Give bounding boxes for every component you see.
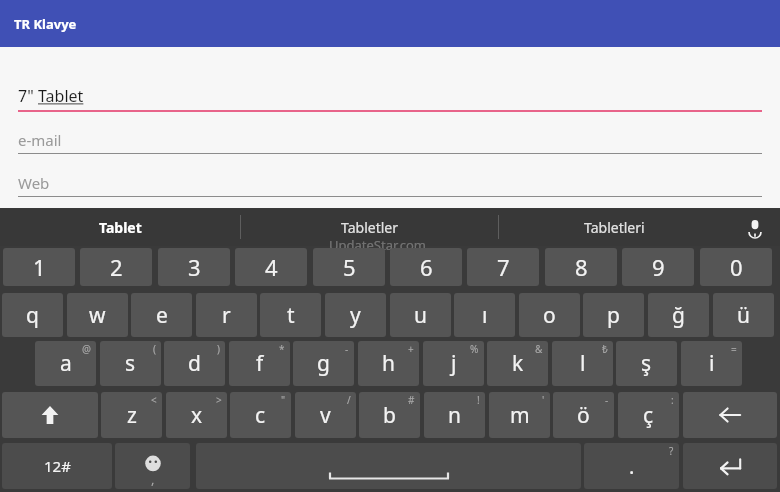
button[interactable]: 0 [700, 248, 772, 286]
button[interactable]: y [325, 293, 386, 337]
button[interactable]: g [293, 341, 354, 386]
staticText: * [279, 342, 285, 356]
button[interactable]: 12# [2, 443, 112, 489]
button[interactable]: ı [454, 293, 515, 337]
staticText: # [408, 393, 415, 407]
staticText: g [317, 349, 330, 378]
staticText: e [156, 301, 168, 330]
button[interactable]: c [230, 392, 291, 438]
staticText: - [605, 393, 609, 407]
staticText: 8 [575, 252, 588, 282]
button[interactable]: Shift [2, 392, 98, 438]
staticText: & [535, 342, 543, 356]
staticText: @ [82, 342, 91, 356]
staticText: 9 [652, 252, 665, 282]
button[interactable]: k [487, 341, 548, 386]
button[interactable]: 2 [80, 248, 152, 286]
staticText: 2 [110, 252, 123, 282]
button[interactable]: Voice input [729, 209, 780, 246]
staticText: ı [482, 301, 488, 330]
button[interactable]: 6 [390, 248, 462, 286]
button[interactable]: ğ [648, 293, 709, 337]
button[interactable]: s [100, 341, 161, 386]
button[interactable]: Space [196, 443, 581, 489]
button[interactable]: Emoji [115, 443, 190, 489]
button[interactable]: 3 [158, 248, 230, 286]
button[interactable]: o [519, 293, 580, 337]
staticText: a [60, 349, 72, 378]
staticText: - [345, 342, 349, 356]
button[interactable]: Backspace [683, 392, 777, 438]
staticText: 5 [343, 252, 356, 282]
button[interactable]: v [295, 392, 356, 438]
button[interactable]: e [131, 293, 192, 337]
staticText: q [26, 301, 39, 330]
button[interactable]: d [164, 341, 225, 386]
button[interactable]: m [489, 392, 550, 438]
button[interactable]: 7 [467, 248, 539, 286]
staticText: 7" [18, 85, 38, 107]
staticText: h [382, 349, 395, 378]
staticText: ₺ [602, 342, 608, 356]
button[interactable]: u [390, 293, 451, 337]
staticText: y [350, 301, 361, 330]
button[interactable]: w [67, 293, 128, 337]
staticText: v [320, 401, 331, 430]
button[interactable]: i [681, 341, 742, 386]
button[interactable]: l [552, 341, 613, 386]
staticText: Web [18, 173, 50, 193]
staticText: b [383, 401, 396, 430]
button[interactable]: p [583, 293, 644, 337]
staticText: ö [577, 401, 590, 430]
button[interactable]: ö [553, 392, 614, 438]
button[interactable]: 4 [235, 248, 307, 286]
button[interactable]: Tabletleri [499, 209, 729, 246]
button[interactable]: j [423, 341, 484, 386]
staticText: ' [542, 393, 545, 407]
staticText: % [470, 342, 479, 356]
button[interactable]: . [584, 443, 679, 489]
staticText: z [127, 401, 137, 430]
staticText: . [629, 453, 635, 480]
button[interactable]: ş [616, 341, 677, 386]
staticText: l [580, 349, 586, 378]
button[interactable]: x [166, 392, 227, 438]
button[interactable]: z [101, 392, 162, 438]
button[interactable]: ç [618, 392, 679, 438]
staticText: ş [641, 349, 652, 378]
staticText: ( [153, 342, 156, 356]
staticText: ? [669, 444, 674, 458]
staticText: Tablet [99, 218, 142, 237]
staticText: : [671, 393, 674, 407]
button[interactable]: Tabletler [241, 209, 498, 246]
button[interactable]: n [424, 392, 485, 438]
button[interactable]: Enter [683, 443, 777, 489]
button[interactable]: a [35, 341, 96, 386]
staticText: 7 [497, 252, 510, 282]
staticText: ü [737, 301, 750, 330]
staticText: 6 [420, 252, 433, 282]
staticText: > [216, 393, 222, 407]
button[interactable]: b [359, 392, 420, 438]
staticText: n [448, 401, 461, 430]
staticText: e-mail [18, 130, 62, 150]
button[interactable]: 5 [313, 248, 385, 286]
button[interactable]: 8 [545, 248, 617, 286]
staticText: k [512, 349, 524, 378]
button[interactable]: Tablet [0, 209, 240, 246]
staticText: x [191, 401, 203, 430]
button[interactable]: 1 [3, 248, 75, 286]
button[interactable]: r [196, 293, 257, 337]
button[interactable]: ü [713, 293, 774, 337]
button[interactable]: f [229, 341, 290, 386]
staticText: 12# [44, 456, 71, 476]
staticText: u [414, 301, 427, 330]
staticText: d [188, 349, 201, 378]
button[interactable]: h [358, 341, 419, 386]
button[interactable]: t [260, 293, 321, 337]
button[interactable]: 9 [622, 248, 694, 286]
button[interactable]: q [2, 293, 63, 337]
